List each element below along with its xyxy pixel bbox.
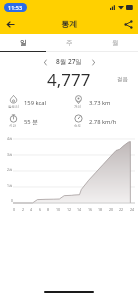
staticText: 4천 [7,136,13,141]
button[interactable]: Previous day [39,56,51,68]
staticText: 0 [13,207,16,212]
staticText: 3천 [7,152,13,157]
staticText: 3.73 km [89,99,111,107]
staticText: 159 kcal [24,99,47,107]
button[interactable]: 시간 [4,114,69,129]
button[interactable]: 거리 [69,95,134,110]
staticText: 4 [30,207,33,212]
button[interactable]: Back [0,14,20,34]
staticText: 월 [112,39,119,47]
staticText: 10 [56,207,61,212]
staticText: 일 [20,39,27,47]
staticText: 18 [98,207,103,212]
button[interactable]: 속도 [69,114,134,129]
staticText: 2천 [7,167,13,172]
staticText: 22 [119,207,124,212]
staticText: 12 [67,207,72,212]
staticText: 칼로리 [8,105,19,110]
button[interactable]: 칼로리 [4,95,69,110]
staticText: 11:53 [8,4,23,11]
staticText: 2 [22,207,25,212]
button[interactable]: Next day [87,56,99,68]
button[interactable]: 월 [92,34,138,51]
staticText: 8 [47,207,50,212]
staticText: 걸음 [117,76,128,83]
staticText: 20 [109,207,114,212]
button[interactable]: 일 [0,34,46,51]
staticText: 16 [88,207,93,212]
staticText: 55 분 [24,118,38,126]
staticText: 0 [11,198,13,203]
staticText: 시간 [9,124,17,129]
staticText: 거리 [74,105,82,110]
staticText: 통계 [61,19,77,29]
button[interactable]: 주 [46,34,92,51]
staticText: 2.78 km/h [89,118,117,126]
staticText: 8월 27일 [56,57,82,66]
staticText: 4,777 [47,68,91,90]
staticText: 14 [77,207,82,212]
staticText: 1천 [7,183,13,188]
staticText: 주 [66,39,73,47]
button[interactable]: Share [118,14,138,34]
staticText: 6 [39,207,42,212]
staticText: 속도 [74,124,82,129]
staticText: 24 [130,207,135,212]
